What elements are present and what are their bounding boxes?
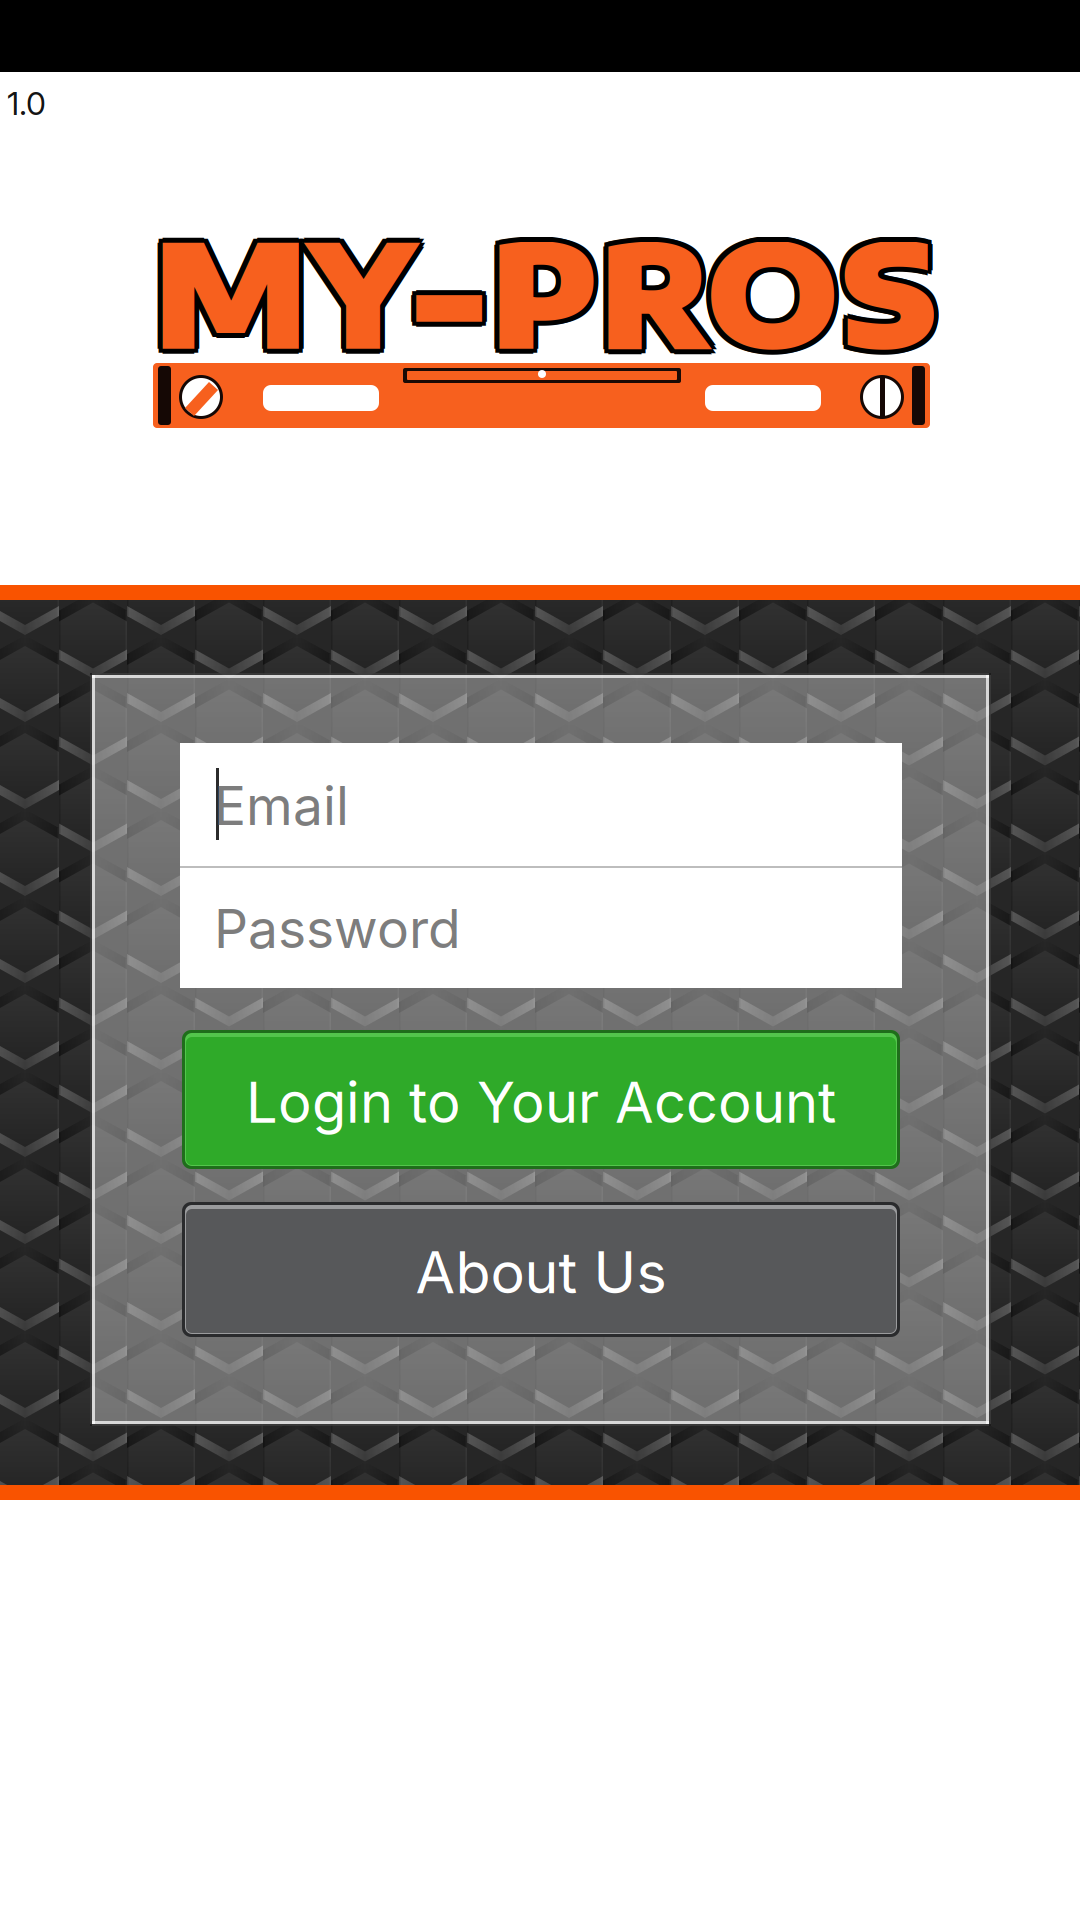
staticText: MY-PROS	[157, 206, 942, 384]
staticText: About Us	[415, 1238, 666, 1307]
staticText: MY-PROS	[149, 206, 934, 384]
staticText: MY-PROS	[158, 202, 943, 380]
staticText: MY-PROS	[157, 198, 942, 376]
staticText: MY-PROS	[153, 202, 938, 380]
staticText: Password	[214, 896, 461, 961]
staticText: MY-PROS	[153, 197, 938, 375]
button[interactable]: About Us	[182, 1202, 900, 1337]
staticText: Login to Your Account	[246, 1069, 836, 1136]
staticText: MY-PROS	[149, 198, 934, 376]
button[interactable]: Login to Your Account	[182, 1030, 900, 1169]
staticText: Email	[214, 773, 349, 838]
staticText: 1.0	[7, 84, 46, 123]
staticText: MY-PROS	[148, 202, 933, 380]
staticText: MY-PROS	[153, 207, 938, 385]
